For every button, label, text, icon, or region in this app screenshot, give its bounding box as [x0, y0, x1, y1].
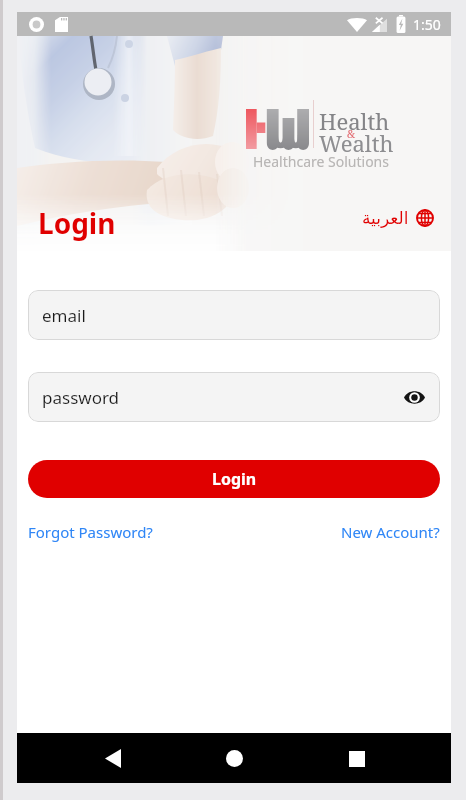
staticText: Login: [212, 468, 257, 490]
button[interactable]: New Account?: [341, 522, 440, 542]
staticText: Wealth: [319, 128, 394, 158]
button[interactable]: Home: [211, 735, 258, 782]
staticText: email: [42, 304, 86, 327]
button[interactable]: Login: [28, 460, 440, 498]
button[interactable]: Forgot Password?: [28, 522, 153, 542]
staticText: &: [347, 126, 356, 141]
staticText: Login: [38, 204, 116, 242]
other: Change language: [416, 209, 434, 227]
button[interactable]: Recents: [333, 735, 380, 782]
button[interactable]: العربية: [362, 208, 434, 228]
staticText: Health: [319, 106, 390, 136]
button[interactable]: password: [28, 372, 440, 422]
button[interactable]: email: [28, 290, 440, 340]
staticText: New Account?: [341, 522, 440, 542]
staticText: العربية: [362, 208, 409, 228]
staticText: password: [42, 386, 120, 409]
staticText: Healthcare Solutions: [253, 152, 389, 171]
staticText: 1:50: [413, 15, 441, 34]
button[interactable]: Show password: [400, 383, 428, 411]
button[interactable]: Back: [89, 735, 136, 782]
staticText: Forgot Password?: [28, 522, 153, 542]
